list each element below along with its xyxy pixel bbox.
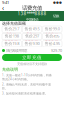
staticText: 20元 <box>6 47 17 53</box>
staticText: 立即充值 <box>22 55 42 60</box>
staticText: 售价495 <box>45 33 59 39</box>
staticText: 售价4.95 <box>45 41 60 46</box>
staticText: 切换 <box>53 14 59 18</box>
staticText: ‹ <box>2 3 4 13</box>
button[interactable]: Back <box>0 5 6 11</box>
staticText: 5元 <box>48 47 56 53</box>
button[interactable]: 售价297 <box>22 33 42 40</box>
button[interactable]: 售价99.0 <box>43 26 62 32</box>
button[interactable]: 切换 <box>52 14 60 18</box>
staticText: 138****8888 <box>17 10 46 16</box>
button[interactable]: 立即充值 <box>2 54 62 61</box>
staticText: 充值说明 <box>2 67 18 72</box>
staticText: 200元 <box>5 39 19 45</box>
staticText: 50元 <box>26 32 37 38</box>
staticText: 话费充值 <box>22 5 42 11</box>
button[interactable]: 售价4.95 <box>43 41 62 47</box>
button[interactable]: 售价9.90 <box>22 41 42 47</box>
staticText: ¥29.70 <box>51 48 62 53</box>
button[interactable]: Agree <box>2 49 5 52</box>
staticText: 选择充值面额 <box>2 21 26 26</box>
staticText: 中国移动 <box>26 17 38 22</box>
button[interactable]: 售价29.7 <box>2 26 21 32</box>
staticText: 300元 <box>25 39 39 45</box>
staticText: 10元 <box>26 47 37 53</box>
staticText: 30元 <box>6 32 17 38</box>
staticText: 售价198 <box>5 33 19 39</box>
staticText: 售价9.90 <box>24 41 39 46</box>
staticText: 我已阅读并同意 <box>6 48 27 53</box>
staticText: 售价99.0 <box>45 26 60 31</box>
staticText: 1. 充值一般在1-10分钟内到账，特殊情况24小时内到账。 <box>2 73 52 81</box>
staticText: 9:41 <box>2 0 9 5</box>
staticText: 100元 <box>45 32 59 38</box>
staticText: 充值成功后不支持退款 <box>17 62 47 66</box>
staticText: 售价19.8 <box>4 41 19 46</box>
staticText: 售价297 <box>25 33 39 39</box>
button[interactable]: 售价49.5 <box>22 26 42 32</box>
staticText: 售价29.7 <box>4 26 19 31</box>
staticText: 2. 请确认号码无误，充错号码概不退款。 <box>2 82 51 90</box>
button[interactable]: 售价198 <box>2 33 21 40</box>
button[interactable]: 售价19.8 <box>2 41 21 47</box>
staticText: 售价49.5 <box>24 26 39 31</box>
staticText: ●●● <box>53 1 62 4</box>
staticText: 3. 如有疑问请联系在线客服处理。 <box>2 91 48 95</box>
button[interactable]: 售价495 <box>43 33 62 40</box>
staticText: 500元 <box>45 39 59 45</box>
